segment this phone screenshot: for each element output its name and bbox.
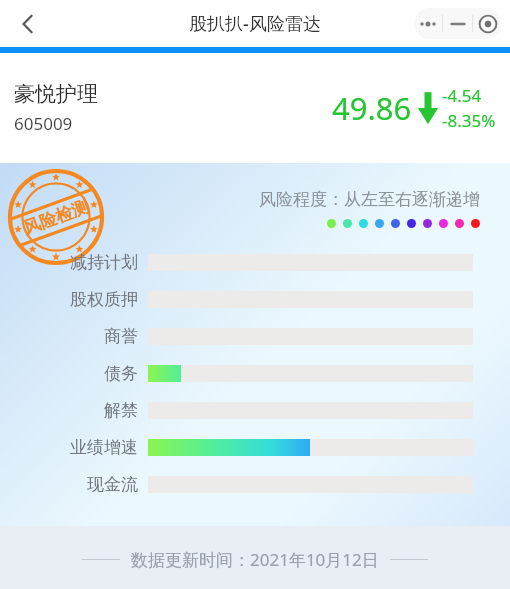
staticText: 豪悦护理 [14,81,98,107]
button[interactable]: 股权质押 [0,281,510,318]
staticText: 商誉 [104,326,138,347]
staticText: 现金流 [87,474,138,495]
staticText: 减持计划 [70,252,138,273]
staticText: 业绩增速 [70,437,138,458]
button[interactable]: 业绩增速 [0,429,510,466]
button[interactable]: Back [6,2,50,46]
staticText: -4.54 [442,84,482,107]
staticText: 605009 [14,112,73,135]
staticText: 49.86 [332,87,412,129]
button[interactable]: 债务 [0,355,510,392]
staticText: 股扒扒-风险雷达 [189,11,321,36]
button[interactable]: 商誉 [0,318,510,355]
button[interactable]: 现金流 [0,466,510,503]
button[interactable]: Mini program menu [414,8,502,39]
staticText: -8.35% [442,109,496,132]
staticText: 数据更新时间：2021年10月12日 [131,548,379,571]
staticText: 股权质押 [70,289,138,310]
button[interactable]: 减持计划 [0,244,510,281]
staticText: 风险程度：从左至右逐渐递增 [259,189,480,210]
staticText: 债务 [104,363,138,384]
staticText: 风险检测 [21,196,92,239]
button[interactable]: 解禁 [0,392,510,429]
staticText: 解禁 [104,400,138,421]
